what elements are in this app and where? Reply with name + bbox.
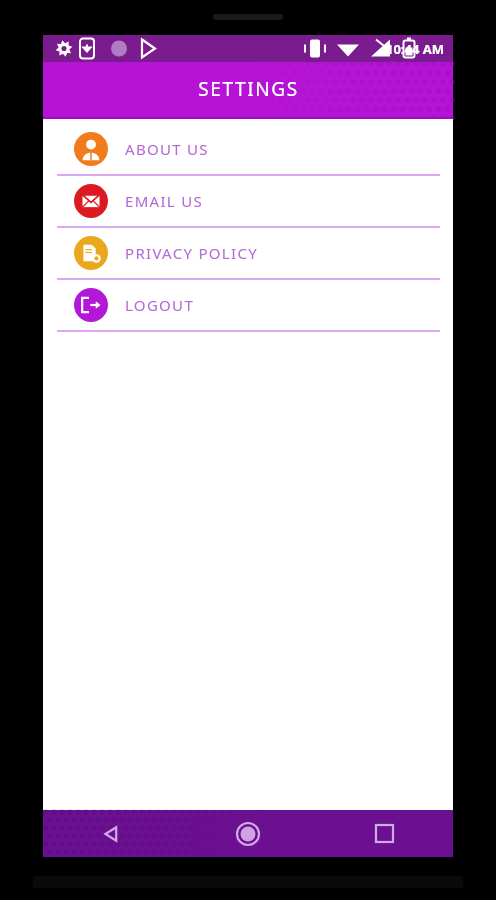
- staticText: 10:44 AM: [386, 40, 445, 58]
- button[interactable]: PRIVACY POLICY: [43, 233, 453, 285]
- staticText: SETTINGS: [198, 76, 299, 102]
- button[interactable]: EMAIL US: [43, 181, 453, 233]
- button[interactable]: Home: [179, 810, 316, 857]
- staticText: LOGOUT: [125, 295, 195, 315]
- button[interactable]: LOGOUT: [43, 285, 453, 337]
- staticText: PRIVACY POLICY: [125, 243, 258, 263]
- staticText: ABOUT US: [125, 139, 209, 159]
- button[interactable]: Back: [43, 810, 179, 857]
- staticText: EMAIL US: [125, 191, 203, 211]
- button[interactable]: ABOUT US: [43, 129, 453, 181]
- button[interactable]: Recent apps: [316, 810, 453, 857]
